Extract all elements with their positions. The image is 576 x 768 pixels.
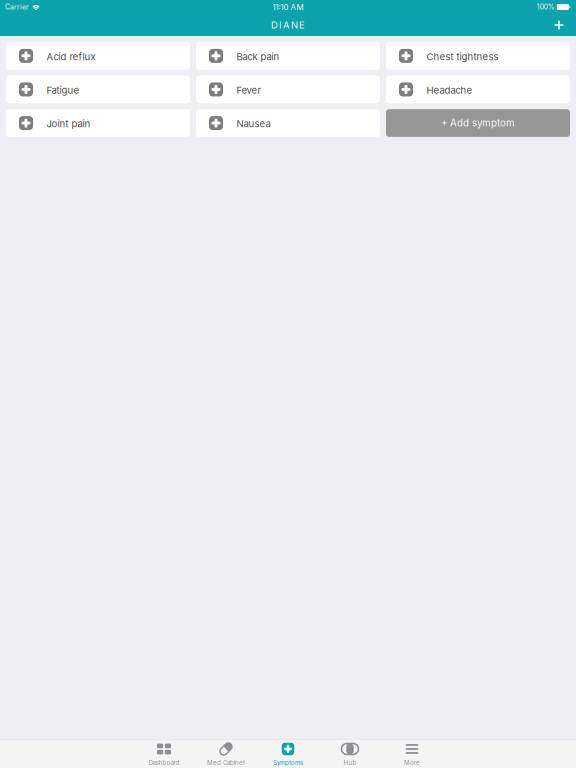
staticText: Med Cabinet	[207, 759, 245, 766]
button[interactable]: Nausea	[196, 109, 380, 137]
staticText: Headache	[426, 84, 472, 96]
button[interactable]: Headache	[386, 76, 570, 103]
staticText: D I A N E	[271, 19, 305, 31]
button[interactable]: Chest tightness	[386, 42, 570, 70]
staticText: Acid reflux	[46, 51, 95, 62]
button[interactable]: Hub	[319, 739, 381, 768]
button[interactable]: Symptoms	[257, 739, 319, 768]
staticText: Fatigue	[46, 84, 79, 96]
staticText: 11:10 AM	[272, 2, 303, 12]
button[interactable]: More	[381, 739, 443, 768]
button[interactable]: Med Cabinet	[195, 739, 257, 768]
button[interactable]: Back pain	[196, 42, 380, 70]
staticText: Symptoms	[273, 759, 303, 766]
staticText: Joint pain	[46, 118, 90, 130]
button[interactable]: Acid reflux	[6, 42, 190, 70]
staticText: Nausea	[236, 118, 270, 130]
button[interactable]: + Add symptom	[386, 109, 570, 137]
button[interactable]: Add	[547, 14, 571, 36]
staticText: Hub	[343, 759, 356, 766]
button[interactable]: Dashboard	[133, 739, 195, 768]
staticText: Dashboard	[148, 759, 179, 766]
button[interactable]: Fatigue	[6, 76, 190, 103]
staticText: + Add symptom	[441, 117, 515, 129]
staticText: Carrier	[5, 3, 29, 11]
staticText: Back pain	[236, 51, 279, 62]
button[interactable]: Fever	[196, 76, 380, 103]
staticText: Chest tightness	[426, 51, 498, 62]
staticText: More	[404, 759, 420, 766]
staticText: 100%	[537, 3, 555, 11]
staticText: Fever	[236, 84, 261, 96]
button[interactable]: Joint pain	[6, 109, 190, 137]
